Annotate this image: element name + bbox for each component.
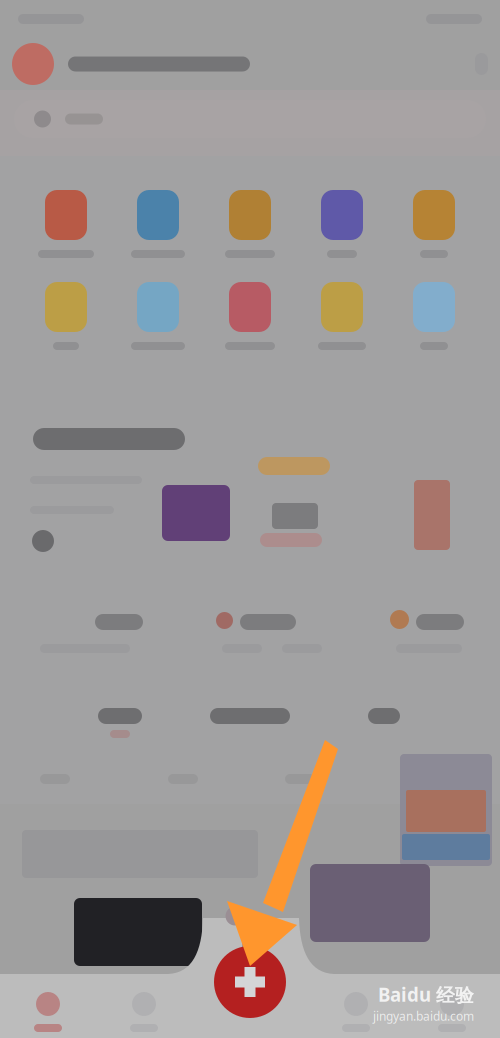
button[interactable]: App shortcut [388,190,480,258]
button[interactable]: App shortcut [112,282,204,350]
staticText: jingyan.baidu.com [373,1008,474,1024]
button[interactable]: App shortcut [296,282,388,350]
button[interactable]: App shortcut [296,190,388,258]
button[interactable] [14,100,486,138]
staticText: Baidu 经验 [378,982,474,1007]
button[interactable]: Tab [308,986,404,1038]
button[interactable]: Tab [404,986,500,1038]
button[interactable]: App shortcut [20,282,112,350]
button[interactable]: App shortcut [204,190,296,258]
button[interactable]: App shortcut [388,282,480,350]
button[interactable]: App shortcut [20,190,112,258]
button[interactable]: App shortcut [112,190,204,258]
button[interactable]: Create [214,946,286,1018]
button[interactable]: App shortcut [204,282,296,350]
button[interactable]: Tab [96,986,192,1038]
button[interactable]: Tab [0,986,96,1038]
